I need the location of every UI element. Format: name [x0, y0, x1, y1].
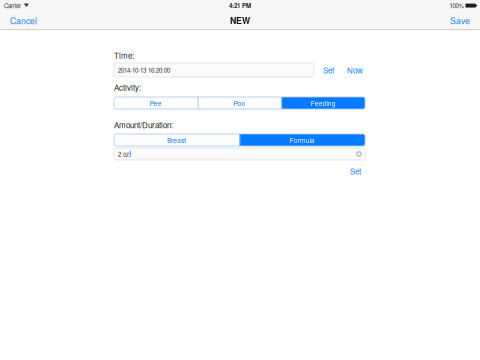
staticText: 2014-10-13 16:20:00: [118, 66, 170, 74]
staticText: Breast: [167, 135, 186, 145]
button[interactable]: Now: [343, 63, 367, 77]
button[interactable]: Feeding: [281, 97, 365, 109]
staticText: 2 oz: [118, 150, 129, 158]
staticText: Save: [450, 14, 470, 27]
staticText: Time:: [114, 49, 134, 61]
staticText: Carrier: [4, 1, 21, 10]
staticText: Set: [350, 165, 361, 177]
staticText: 100%: [449, 1, 463, 10]
staticText: Set: [323, 64, 334, 76]
staticText: Cancel: [10, 14, 37, 27]
staticText: Amount/Duration:: [114, 119, 173, 130]
button[interactable]: Poo: [198, 97, 281, 109]
staticText: Poo: [233, 98, 245, 108]
button[interactable]: Set: [346, 166, 365, 176]
button[interactable]: Pee: [114, 97, 198, 109]
button[interactable]: Save: [440, 11, 480, 29]
staticText: Feeding: [311, 98, 336, 108]
staticText: 4:21 PM: [229, 1, 251, 10]
staticText: Activity:: [114, 81, 141, 93]
button[interactable]: Clear text: [356, 151, 362, 157]
button[interactable]: Formula: [239, 134, 365, 146]
staticText: Now: [347, 64, 363, 76]
button[interactable]: Set: [319, 63, 338, 77]
button[interactable]: Breast: [114, 134, 239, 146]
button[interactable]: Cancel: [0, 11, 47, 29]
staticText: Pee: [150, 98, 162, 108]
staticText: Formula: [290, 135, 315, 145]
staticText: NEW: [230, 14, 250, 27]
